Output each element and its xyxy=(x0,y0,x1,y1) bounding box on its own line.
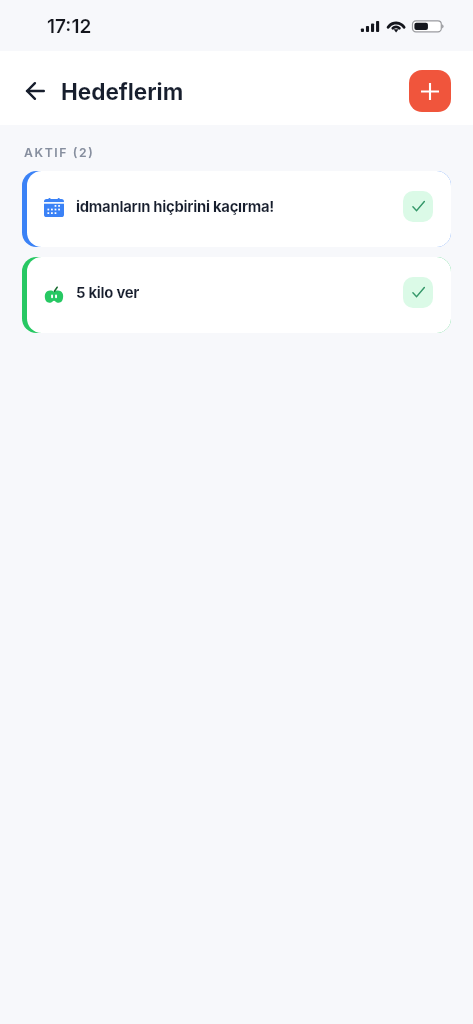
button[interactable]: idmanların hiçbirini kaçırma! xyxy=(27,171,451,247)
button[interactable]: Mark complete xyxy=(403,277,433,308)
staticText: idmanların hiçbirini kaçırma! xyxy=(76,198,275,216)
staticText: AKTIF (2) xyxy=(24,145,95,160)
button[interactable]: Add goal xyxy=(409,70,451,112)
button[interactable]: Back xyxy=(17,73,53,109)
staticText: Hedeflerim xyxy=(61,78,184,105)
staticText: 17:12 xyxy=(47,15,92,38)
staticText: 5 kilo ver xyxy=(76,284,140,302)
button[interactable]: 5 kilo ver xyxy=(27,257,451,333)
button[interactable]: Mark complete xyxy=(403,191,433,222)
